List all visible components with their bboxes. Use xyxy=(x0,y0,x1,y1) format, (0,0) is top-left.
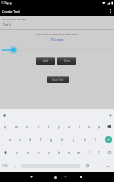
staticText: o xyxy=(88,124,91,129)
button[interactable]: t xyxy=(44,120,54,133)
button[interactable]: n xyxy=(64,146,74,159)
staticText: Create Test xyxy=(2,9,20,14)
button[interactable]: Number of questions slider xyxy=(0,45,114,55)
staticText: t xyxy=(48,124,50,129)
button[interactable]: g xyxy=(46,133,57,146)
button[interactable]: Voice input xyxy=(1,112,7,118)
staticText: h xyxy=(61,137,64,142)
button[interactable]: h xyxy=(57,133,68,146)
button[interactable]: Language xyxy=(80,159,94,172)
staticText: p xyxy=(98,124,101,129)
staticText: q xyxy=(4,124,7,129)
staticText: ! xyxy=(89,150,90,155)
staticText: 10 cases xyxy=(0,38,114,42)
staticText: b xyxy=(58,150,61,155)
button[interactable]: m xyxy=(74,146,84,159)
staticText: Start Test xyxy=(52,78,64,82)
staticText: d xyxy=(29,137,32,142)
staticText: View xyxy=(64,59,70,63)
staticText: c xyxy=(38,150,40,155)
button[interactable]: v xyxy=(44,146,54,159)
button[interactable]: d xyxy=(25,133,35,146)
staticText: Add xyxy=(43,59,48,63)
staticText: z xyxy=(16,150,18,155)
staticText: x xyxy=(27,150,29,155)
button[interactable]: e xyxy=(22,120,33,133)
staticText: v xyxy=(48,150,50,155)
button[interactable]: Add xyxy=(36,57,55,65)
button[interactable]: , xyxy=(10,159,21,172)
staticText: . xyxy=(98,163,99,168)
button[interactable]: Emoji xyxy=(104,146,114,159)
button[interactable]: u xyxy=(64,120,74,133)
button[interactable]: Test 6 xyxy=(0,21,114,29)
staticText: m xyxy=(77,150,81,155)
staticText: ?123 xyxy=(2,164,8,168)
button[interactable]: c xyxy=(33,146,44,159)
button[interactable]: Shift xyxy=(0,146,11,159)
button[interactable]: f xyxy=(35,133,46,146)
button[interactable]: x xyxy=(22,146,33,159)
staticText: Test 6 xyxy=(3,23,11,27)
button[interactable]: Home xyxy=(50,172,61,182)
button[interactable]: Recents xyxy=(75,172,86,182)
button[interactable]: j xyxy=(68,133,79,146)
staticText: r xyxy=(38,124,40,129)
staticText: w xyxy=(15,124,18,129)
button[interactable]: l xyxy=(90,133,101,146)
button[interactable]: Back xyxy=(26,172,37,182)
staticText: y xyxy=(58,124,60,129)
staticText: a xyxy=(9,137,12,142)
button[interactable]: z xyxy=(11,146,22,159)
staticText: e xyxy=(26,124,29,129)
button[interactable]: r xyxy=(33,120,44,133)
button[interactable]: More options xyxy=(106,6,114,16)
button[interactable]: q xyxy=(0,120,11,133)
button[interactable]: Start Test xyxy=(47,76,69,83)
button[interactable]: Settings xyxy=(107,112,113,118)
staticText: u xyxy=(68,124,71,129)
staticText: , xyxy=(15,163,16,168)
staticText: 7:26 xyxy=(1,1,7,5)
staticText: l xyxy=(95,137,96,142)
staticText: Set name for this test xyxy=(2,17,26,20)
staticText: k xyxy=(84,137,86,142)
staticText: i xyxy=(79,124,80,129)
staticText: ? xyxy=(98,150,100,155)
button[interactable]: EN xyxy=(103,159,114,172)
button[interactable]: y xyxy=(54,120,64,133)
button[interactable]: Backspace xyxy=(104,120,114,133)
button[interactable]: w xyxy=(11,120,22,133)
button[interactable]: s xyxy=(15,133,25,146)
staticText: f xyxy=(40,137,42,142)
staticText: s xyxy=(19,137,21,142)
staticText: EN xyxy=(107,164,111,167)
button[interactable]: i xyxy=(74,120,84,133)
button[interactable]: ? xyxy=(94,146,104,159)
staticText: g xyxy=(50,137,53,142)
button[interactable]: k xyxy=(79,133,90,146)
button[interactable]: ?123 xyxy=(0,159,10,172)
button[interactable]: a xyxy=(5,133,15,146)
staticText: Set number of questions using slider xyxy=(0,32,114,35)
button[interactable]: b xyxy=(54,146,64,159)
button[interactable]: ! xyxy=(84,146,94,159)
button[interactable]: o xyxy=(84,120,94,133)
staticText: j xyxy=(73,137,74,142)
button[interactable]: p xyxy=(94,120,104,133)
button[interactable]: View xyxy=(57,57,76,65)
staticText: n xyxy=(68,150,71,155)
button[interactable]: Enter xyxy=(103,133,114,146)
